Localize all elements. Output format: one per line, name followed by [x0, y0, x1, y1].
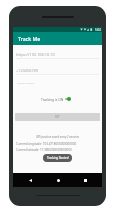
staticText: SET — [55, 115, 60, 119]
staticText: Current longitude: 103.4718000000000000 — [16, 142, 77, 146]
staticText: GPS position saved every 2 minutes — [13, 135, 102, 139]
button[interactable]: Tracking Started — [43, 154, 72, 162]
button[interactable]: Home — [47, 173, 69, 187]
staticText: Current latitude: 17.3850000000000000 — [16, 148, 72, 152]
staticText: https://192.168.10.10 — [16, 52, 55, 57]
staticText: phone number — [17, 81, 34, 84]
staticText: 5:04 — [95, 28, 101, 32]
button[interactable]: Back — [19, 173, 41, 187]
staticText: Track Me — [18, 35, 41, 42]
button[interactable]: Tracking is ON — [13, 97, 71, 101]
button[interactable]: Recent apps — [74, 173, 96, 187]
staticText: Tracking is ON — [41, 97, 64, 101]
staticText: Tracking Started — [47, 156, 69, 160]
staticText: +123456789 — [16, 68, 39, 73]
